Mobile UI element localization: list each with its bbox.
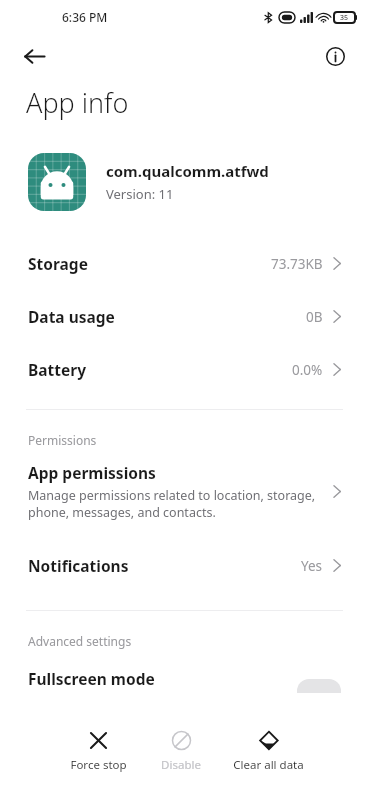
staticText: 35	[340, 13, 349, 23]
button[interactable]: Back	[14, 36, 54, 76]
staticText: Battery	[28, 359, 87, 380]
button[interactable]: Force stop	[52, 726, 144, 773]
button[interactable]: App details	[315, 36, 355, 76]
staticText: Disable	[161, 757, 201, 773]
button[interactable]: Battery	[0, 343, 369, 396]
staticText: Data usage	[28, 306, 115, 327]
staticText: App info	[26, 84, 129, 121]
button[interactable]: App permissions	[0, 462, 369, 521]
staticText: com.qualcomm.atfwd	[106, 161, 269, 181]
staticText: 6:36 PM	[62, 9, 108, 25]
staticText: Notifications	[28, 555, 129, 576]
button[interactable]: Data usage	[0, 290, 369, 343]
staticText: Manage permissions related to location, …	[28, 487, 316, 521]
staticText: 73.73KB	[271, 255, 323, 273]
button[interactable]: Clear all data	[218, 726, 318, 773]
staticText: 0B	[306, 308, 323, 326]
staticText: 0.0%	[292, 361, 323, 379]
button[interactable]: Storage	[0, 237, 369, 290]
staticText: Storage	[28, 253, 88, 274]
button[interactable]: Fullscreen mode	[0, 663, 369, 693]
staticText: Fullscreen mode	[28, 668, 155, 689]
staticText: Permissions	[28, 432, 97, 448]
button[interactable]: Notifications	[0, 539, 369, 592]
staticText: Advanced settings	[28, 633, 132, 649]
staticText: Force stop	[70, 757, 127, 773]
staticText: Version: 11	[106, 185, 174, 203]
staticText: App permissions	[28, 462, 156, 483]
staticText: Yes	[301, 557, 323, 575]
button[interactable]: Disable	[144, 726, 218, 773]
staticText: Clear all data	[233, 757, 304, 773]
